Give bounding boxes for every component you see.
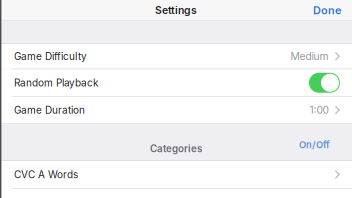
staticText: 1:00 [310, 104, 329, 116]
button[interactable]: Random Playback [0, 69, 352, 96]
button[interactable]: Done [308, 2, 346, 19]
staticText: Random Playback [14, 77, 98, 89]
staticText: Done [313, 4, 341, 17]
staticText: On/Off [299, 139, 330, 150]
staticText: Game Difficulty [14, 50, 87, 62]
staticText: Categories [150, 143, 202, 154]
button[interactable]: Random Playback [309, 73, 340, 93]
staticText: CVC A Words [14, 168, 78, 181]
button[interactable]: Game Duration [0, 97, 352, 123]
staticText: Settings [155, 4, 197, 17]
button[interactable]: On/Off [295, 136, 334, 153]
button[interactable]: CVC A Words [0, 161, 352, 188]
staticText: Game Duration [14, 104, 85, 116]
staticText: Medium [291, 50, 329, 62]
button[interactable]: Game Difficulty [0, 44, 352, 68]
